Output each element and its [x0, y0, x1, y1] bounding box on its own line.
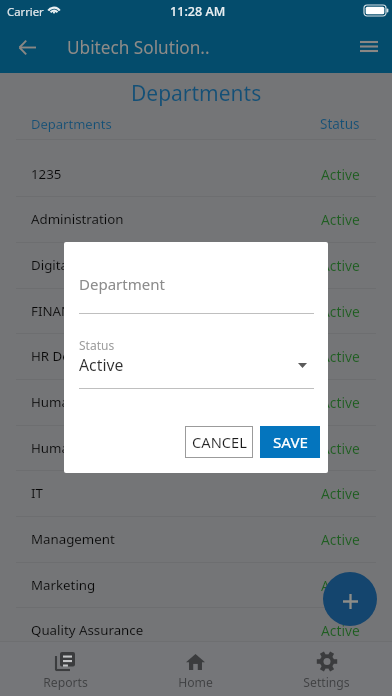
staticText: Ubitech Solution..	[67, 36, 210, 59]
staticText: Settings	[303, 674, 350, 691]
button[interactable]: Digital Marketing	[0, 242, 392, 288]
staticText: Active	[321, 621, 360, 640]
staticText: Departments	[131, 79, 262, 108]
button[interactable]: IT	[0, 470, 392, 516]
staticText: Status	[320, 115, 360, 133]
staticText: Status	[79, 337, 115, 353]
staticText: Active	[321, 210, 360, 229]
button[interactable]: Back	[6, 24, 48, 70]
staticText: Active	[321, 165, 360, 184]
staticText: Marketing	[31, 576, 96, 594]
staticText: Active	[321, 439, 360, 458]
staticText: Department	[79, 274, 165, 294]
staticText: HR Department	[31, 347, 129, 365]
staticText: Active	[79, 354, 124, 376]
button[interactable]: Quality Assurance	[0, 607, 392, 653]
staticText: Active	[321, 484, 360, 503]
staticText: Human Resources	[31, 439, 145, 457]
staticText: Departments	[31, 115, 112, 133]
staticText: Carrier	[7, 4, 44, 19]
staticText: SAVE	[273, 432, 308, 453]
staticText: Active	[321, 393, 360, 412]
button[interactable]: Management	[0, 516, 392, 562]
button[interactable]: Marketing	[0, 562, 392, 608]
staticText: Management	[31, 530, 115, 548]
staticText: Reports	[43, 674, 88, 691]
button[interactable]: CANCEL	[185, 426, 253, 458]
button[interactable]: 1235	[0, 151, 392, 197]
staticText: 1235	[31, 165, 62, 183]
staticText: Digital Marketing	[31, 256, 140, 274]
staticText: Home	[178, 674, 213, 691]
button[interactable]: FINANCE	[0, 288, 392, 334]
staticText: Active	[321, 576, 360, 595]
button[interactable]: Administration	[0, 196, 392, 242]
button[interactable]: Settings	[261, 641, 392, 691]
staticText: Quality Assurance	[31, 621, 144, 639]
button[interactable]: HR Department	[0, 333, 392, 379]
staticText: FINANCE	[31, 302, 87, 320]
button[interactable]: Reports	[0, 641, 130, 691]
button[interactable]: Menu	[349, 23, 389, 69]
staticText: Active	[321, 530, 360, 549]
staticText: 11:28 AM	[170, 3, 226, 20]
staticText: Active	[321, 256, 360, 275]
button[interactable]: Human Resource	[0, 379, 392, 425]
staticText: Human Resource	[31, 393, 139, 411]
button[interactable]: Human Resources	[0, 425, 392, 471]
button[interactable]: SAVE	[260, 426, 320, 458]
staticText: CANCEL	[192, 432, 247, 452]
button[interactable]: Home	[130, 641, 261, 691]
staticText: Active	[321, 347, 360, 366]
staticText: Active	[321, 302, 360, 321]
button[interactable]: Add department	[323, 572, 377, 626]
staticText: IT	[31, 484, 43, 502]
staticText: Administration	[31, 210, 124, 228]
